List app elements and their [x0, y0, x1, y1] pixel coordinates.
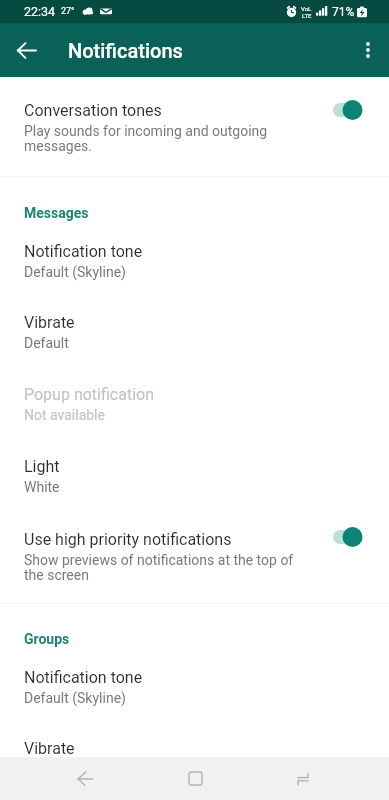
- button[interactable]: Conversation tones: [0, 77, 389, 176]
- staticText: White: [24, 479, 60, 495]
- staticText: LTE: [302, 12, 312, 19]
- staticText: Notification tone: [24, 242, 143, 261]
- staticText: VoL: [301, 5, 312, 12]
- staticText: 71%: [332, 5, 355, 19]
- button[interactable]: More options: [348, 30, 388, 70]
- staticText: Conversation tones: [24, 101, 162, 120]
- button[interactable]: Recent apps: [274, 757, 332, 800]
- staticText: Use high priority notifications: [24, 530, 232, 549]
- button[interactable]: Notification tone: [0, 238, 389, 309]
- staticText: Light: [24, 457, 60, 476]
- staticText: Show previews of notifications at the to…: [24, 552, 304, 584]
- staticText: Groups: [24, 631, 70, 647]
- staticText: 22:34: [24, 4, 56, 19]
- staticText: Not available: [24, 407, 105, 423]
- button[interactable]: Home: [166, 757, 224, 800]
- staticText: Notification tone: [24, 668, 143, 687]
- button[interactable]: Vibrate: [0, 309, 389, 381]
- button[interactable]: Notification tone: [0, 664, 389, 735]
- staticText: Vibrate: [24, 739, 75, 758]
- staticText: Messages: [24, 205, 89, 221]
- staticText: Default: [24, 335, 69, 351]
- button[interactable]: Back: [56, 757, 114, 800]
- staticText: Vibrate: [24, 313, 75, 332]
- button[interactable]: Use high priority notifications: [0, 526, 389, 603]
- staticText: Default (Skyline): [24, 690, 126, 706]
- staticText: 27°: [61, 6, 75, 17]
- button[interactable]: Vibrate: [0, 735, 389, 757]
- button[interactable]: Popup notification: [0, 381, 389, 453]
- staticText: Default (Skyline): [24, 264, 126, 280]
- staticText: Notifications: [68, 39, 183, 62]
- button[interactable]: Light: [0, 453, 389, 526]
- staticText: Popup notification: [24, 385, 154, 404]
- staticText: Play sounds for incoming and outgoing me…: [24, 123, 304, 155]
- button[interactable]: Back: [6, 30, 46, 70]
